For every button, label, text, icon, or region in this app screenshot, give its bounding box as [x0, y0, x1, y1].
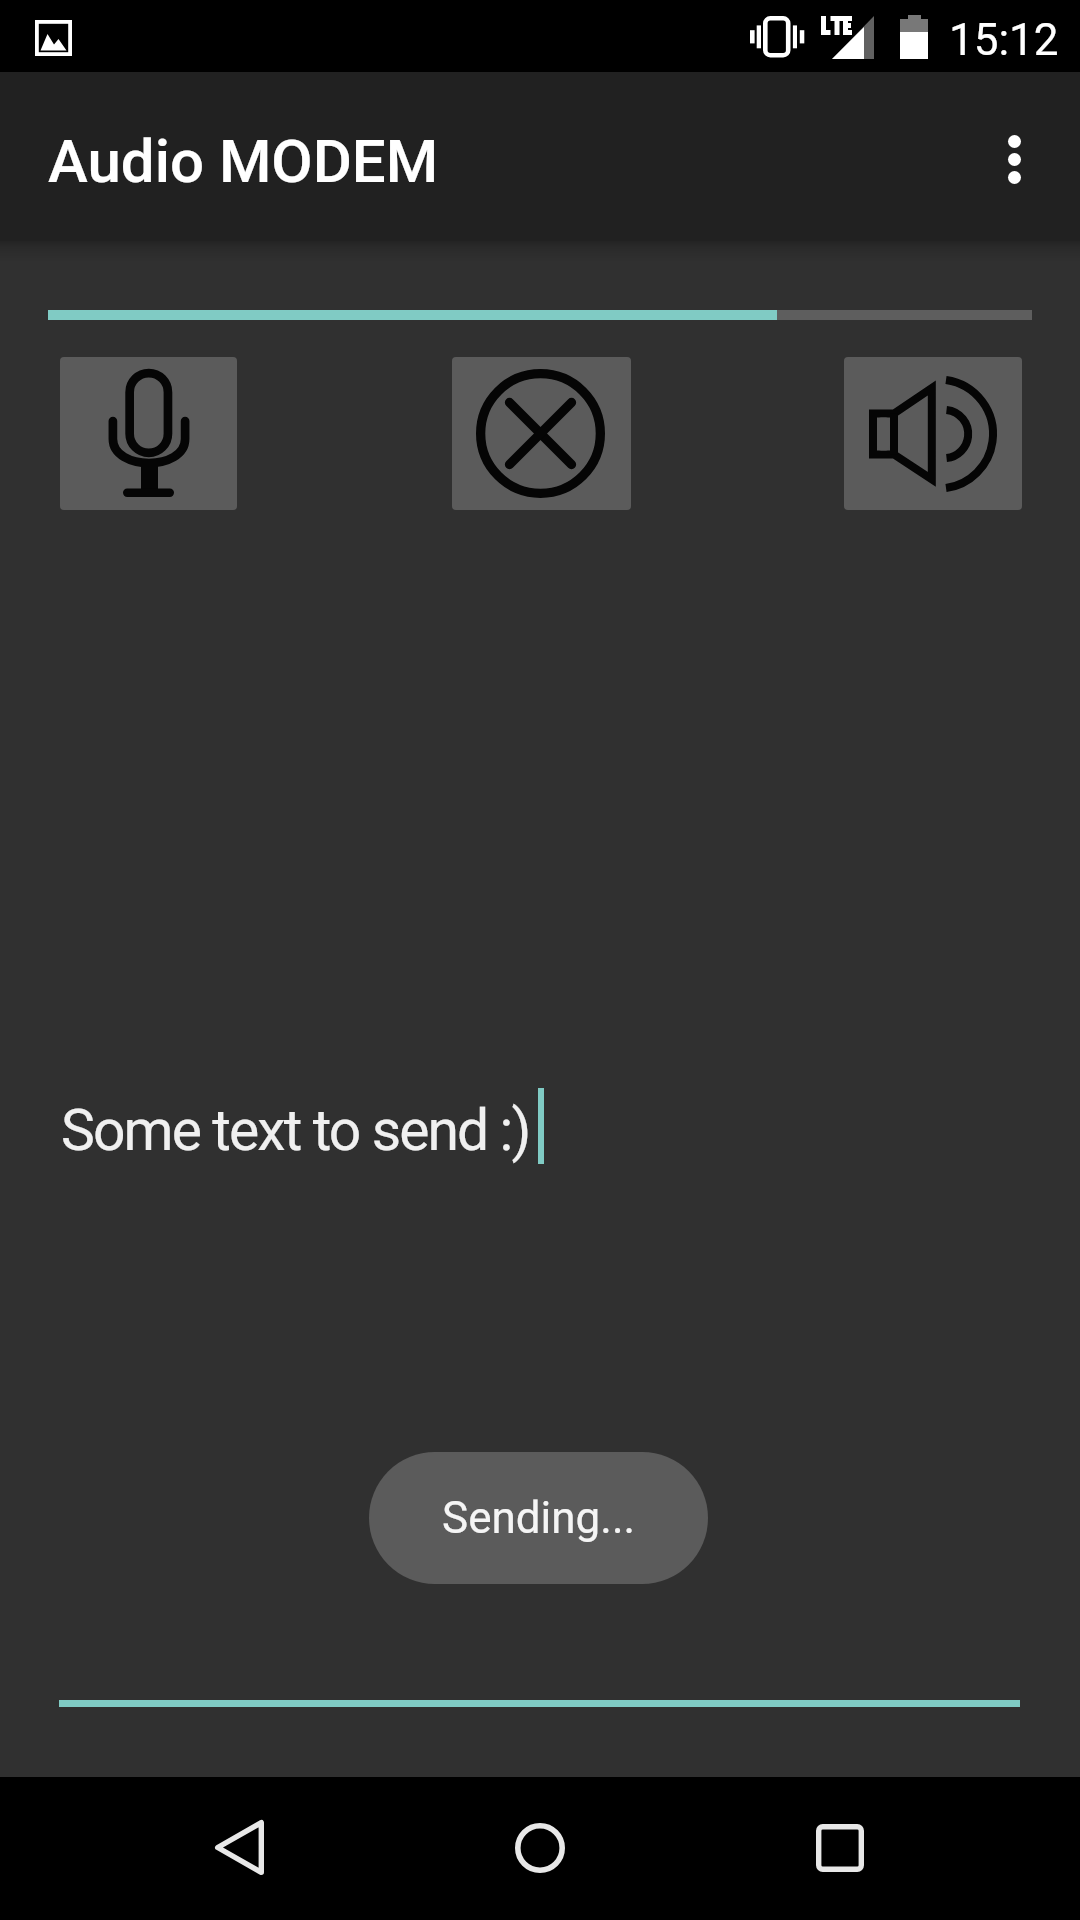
staticText: Sending...: [442, 1492, 636, 1544]
button[interactable]: Recents: [750, 1777, 930, 1920]
staticText: Some text to send :): [61, 1097, 530, 1164]
button[interactable]: Record: [60, 357, 237, 510]
button[interactable]: Play: [844, 357, 1022, 510]
button[interactable]: Sending...: [369, 1452, 708, 1584]
staticText: 15:12: [949, 14, 1059, 66]
button[interactable]: Back: [150, 1777, 330, 1920]
button[interactable]: Home: [450, 1777, 630, 1920]
button[interactable]: More options: [966, 111, 1062, 207]
button[interactable]: Stop: [452, 357, 631, 510]
staticText: Audio MODEM: [48, 126, 439, 196]
